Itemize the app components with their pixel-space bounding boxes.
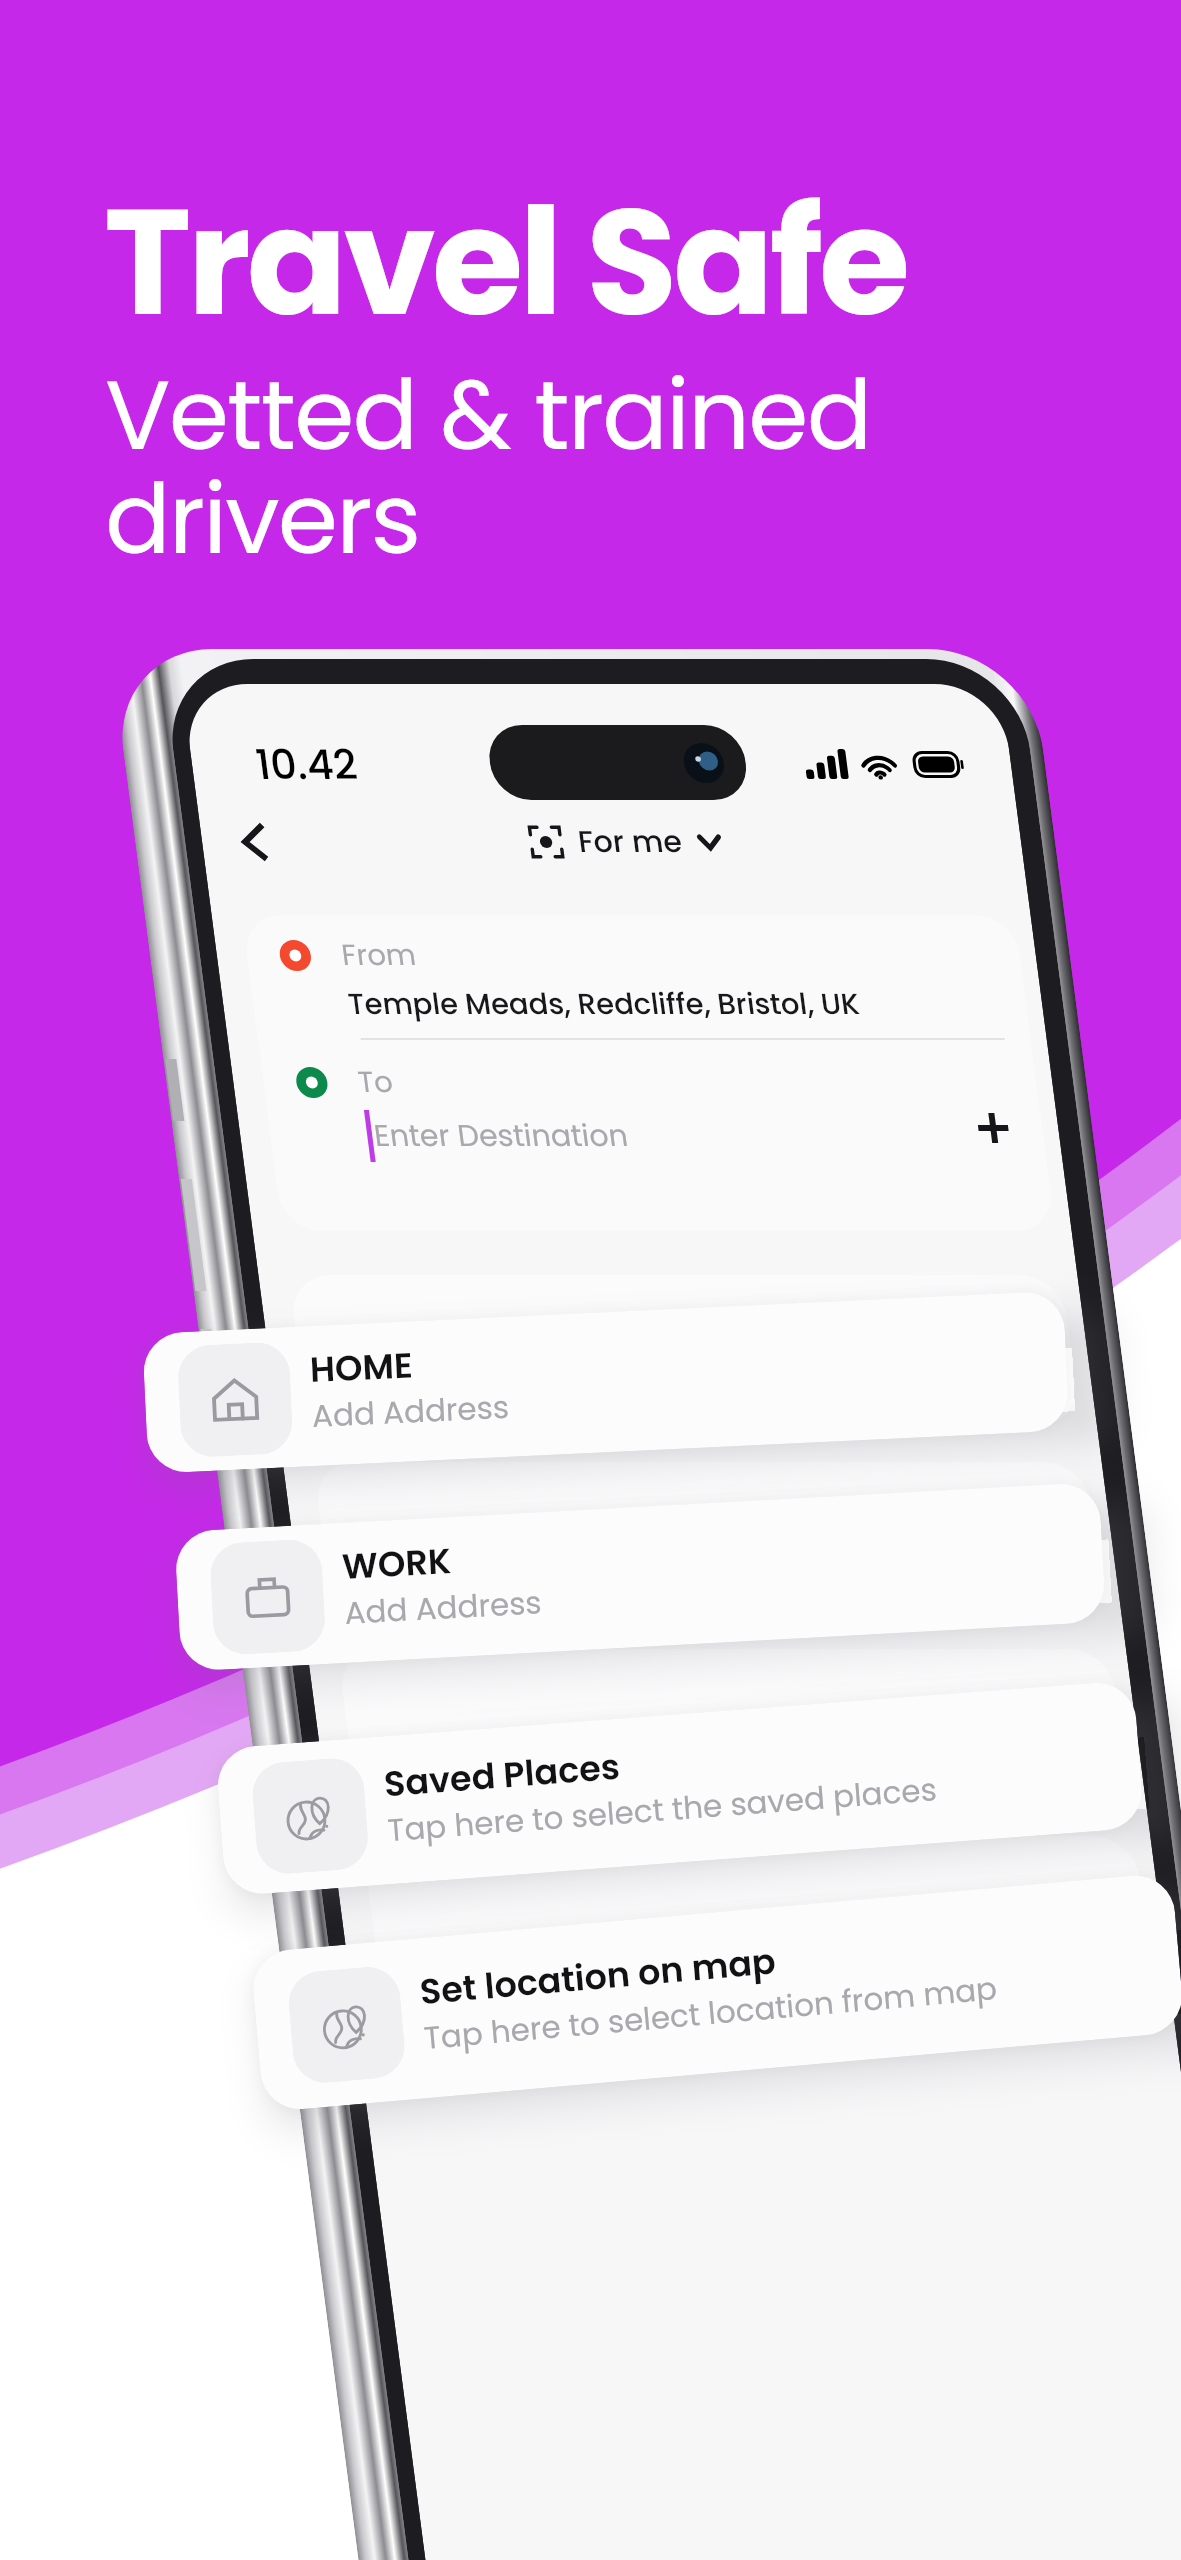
staticText: Saved Places — [382, 1742, 622, 1808]
button[interactable]: Saved Places — [215, 1680, 1144, 1896]
staticText: To — [302, 1062, 337, 1103]
button[interactable]: HOME — [142, 1291, 1070, 1474]
staticText: Tap here to select location from map — [422, 1966, 999, 2059]
button[interactable]: Back — [193, 809, 263, 875]
staticText: Temple Meads, Redcliffe, Bristol, UK — [302, 984, 814, 1025]
staticText: 10.42 — [241, 736, 342, 793]
staticText: Travel Safe — [104, 159, 907, 366]
staticText: Vetted & trained drivers — [105, 347, 871, 587]
staticText: Tap here to select the saved places — [386, 1767, 939, 1851]
staticText: WORK — [341, 1536, 452, 1591]
staticText: Enter Destination — [311, 1115, 565, 1157]
staticText: Add Address — [343, 1580, 543, 1634]
button[interactable]: Set location on map — [250, 1872, 1181, 2112]
button[interactable]: From — [207, 915, 980, 1231]
staticText: For me — [553, 821, 657, 863]
staticText: Add Address — [311, 1385, 511, 1437]
staticText: HOME — [309, 1340, 414, 1394]
staticText: From — [302, 935, 376, 976]
button[interactable]: For me — [503, 821, 694, 863]
staticText: Set location on map — [418, 1936, 778, 2016]
button[interactable]: WORK — [174, 1482, 1106, 1672]
